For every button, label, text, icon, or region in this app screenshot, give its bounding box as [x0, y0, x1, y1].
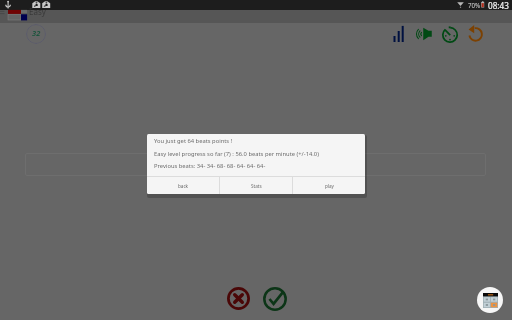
- staticText: Easy: [29, 6, 46, 17]
- staticText: 08:43: [488, 0, 509, 10]
- staticText: 70%: [468, 1, 481, 9]
- button[interactable]: 32: [26, 24, 46, 44]
- button[interactable]: Stats: [220, 177, 292, 194]
- staticText: Previous beats: 34- 34- 68- 68- 64- 64- …: [154, 162, 266, 170]
- staticText: Stats: [251, 183, 262, 189]
- button[interactable]: back: [147, 177, 219, 194]
- button[interactable]: play: [293, 177, 365, 194]
- button[interactable]: Calculator: [477, 287, 503, 313]
- staticText: 32: [32, 28, 41, 38]
- button[interactable]: Reject: [227, 287, 250, 310]
- button[interactable]: Accept: [263, 287, 287, 311]
- staticText: You just get 64 beats points !: [154, 137, 233, 145]
- button[interactable]: Stats: [391, 25, 409, 43]
- staticText: play: [325, 183, 334, 189]
- staticText: back: [178, 183, 189, 189]
- button[interactable]: Menu: [0, 9, 6, 15]
- button[interactable]: Sound: [414, 26, 434, 42]
- button[interactable]: Reset: [466, 24, 486, 44]
- staticText: Easy level progress so far (7) : 56.0 be…: [154, 150, 319, 158]
- button[interactable]: Timer: [440, 25, 460, 45]
